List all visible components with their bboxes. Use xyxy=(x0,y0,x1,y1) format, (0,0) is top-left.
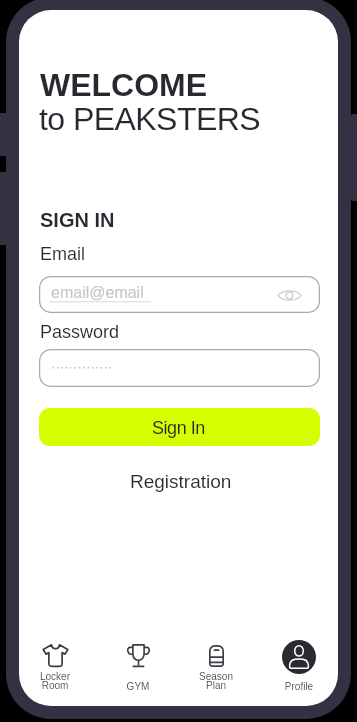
staticText: Sign In xyxy=(152,418,205,438)
button[interactable]: Registration xyxy=(130,471,232,492)
staticText: email@email xyxy=(51,284,144,302)
staticText: Password xyxy=(40,322,120,342)
button[interactable]: email@email xyxy=(39,276,320,313)
staticText: to PEAKSTERS xyxy=(39,101,261,137)
button[interactable]: GYM xyxy=(100,635,176,693)
staticText: WELCOME xyxy=(40,67,208,103)
staticText: Email xyxy=(40,244,86,264)
staticText: GYM xyxy=(100,681,176,692)
staticText: Registration xyxy=(130,471,232,492)
staticText: Locker Room xyxy=(19,671,93,692)
button[interactable]: Season Plan xyxy=(178,635,254,693)
staticText: Profile xyxy=(261,681,337,692)
staticText: Season Plan xyxy=(178,671,254,692)
button[interactable]: Locker Room xyxy=(19,635,93,693)
button[interactable] xyxy=(39,349,320,387)
button[interactable]: Show password xyxy=(274,280,304,310)
button[interactable]: Profile xyxy=(261,635,337,693)
button[interactable]: Sign In xyxy=(39,408,320,446)
staticText: SIGN IN xyxy=(40,209,115,231)
